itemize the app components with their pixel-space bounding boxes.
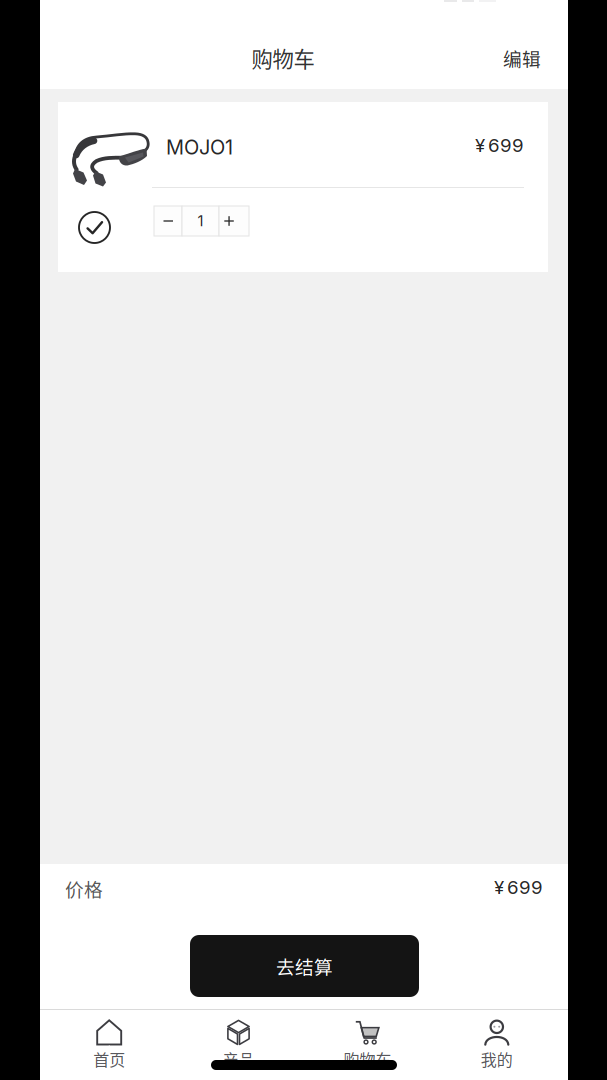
button[interactable]: 去结算 [190,935,419,997]
button[interactable]: 产品 [190,1019,286,1071]
staticText: 1 [197,212,203,230]
staticText: 我的 [481,1047,513,1071]
staticText: 首页 [93,1047,125,1071]
staticText: 编辑 [503,44,541,71]
button[interactable]: 增加数量 [219,206,249,236]
button[interactable]: 减少数量 [154,206,182,236]
button[interactable]: 首页 [61,1019,157,1071]
staticText: 购物车 [344,1047,392,1071]
staticText: ¥ [494,876,504,899]
staticText: ¥ [475,134,485,157]
staticText: 价格 [65,875,103,902]
staticText: MOJO1 [166,135,233,159]
button[interactable]: 购物车 [320,1019,416,1071]
staticText: 699 [507,876,543,899]
staticText: 699 [488,134,524,157]
staticText: 购物车 [251,43,314,73]
staticText: 去结算 [276,952,333,979]
button[interactable]: 选择商品 [70,203,119,252]
button[interactable]: 编辑 [492,35,552,80]
button[interactable]: 我的 [449,1019,545,1071]
staticText: 产品 [222,1047,254,1071]
